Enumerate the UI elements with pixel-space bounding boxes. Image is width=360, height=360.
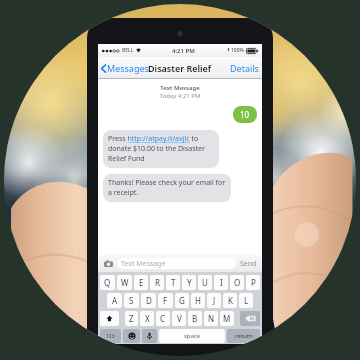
button[interactable]: E <box>134 275 148 290</box>
button[interactable]: S <box>124 293 139 308</box>
staticText: Disaster Relief <box>148 62 212 74</box>
button[interactable]: Delete <box>240 311 260 326</box>
staticText: O <box>234 277 241 288</box>
button[interactable]: W <box>117 275 132 290</box>
staticText: Text Message <box>103 84 257 92</box>
staticText: H <box>195 295 201 306</box>
button[interactable]: Y <box>182 275 196 290</box>
staticText: R <box>155 277 160 288</box>
staticText: BELL <box>122 47 134 54</box>
button[interactable]: X <box>140 311 154 326</box>
staticText: W <box>121 277 129 288</box>
button[interactable]: K <box>223 293 237 308</box>
staticText: Send <box>240 259 257 269</box>
button[interactable]: M <box>220 311 234 326</box>
staticText: L <box>244 295 249 306</box>
button[interactable]: Send <box>239 256 258 272</box>
button[interactable]: D <box>141 293 156 308</box>
button[interactable]: A <box>107 293 122 308</box>
button[interactable]: Camera <box>102 258 114 270</box>
staticText: 4:21 PM <box>172 47 195 55</box>
staticText: V <box>177 313 182 324</box>
button[interactable]: U <box>198 275 212 290</box>
button[interactable]: F <box>158 293 173 308</box>
staticText: C <box>160 313 166 324</box>
button[interactable]: O <box>230 275 244 290</box>
button[interactable]: L <box>239 293 253 308</box>
staticText: J <box>213 295 216 306</box>
button[interactable]: Shift <box>100 311 119 326</box>
staticText: A <box>112 295 118 306</box>
button[interactable]: J <box>207 293 221 308</box>
staticText: M <box>223 313 231 324</box>
staticText: F <box>163 295 168 306</box>
staticText: E <box>139 277 144 288</box>
staticText: 123 <box>106 333 115 340</box>
staticText: Text Message <box>121 259 166 269</box>
button[interactable]: Messages <box>98 58 152 78</box>
button[interactable]: G <box>175 293 189 308</box>
button[interactable]: 10 <box>233 106 257 123</box>
button[interactable]: Dictation <box>142 329 157 343</box>
button[interactable]: 123 <box>100 329 121 343</box>
button[interactable]: Q <box>100 275 115 290</box>
staticText: X <box>145 313 150 324</box>
staticText: T <box>171 277 176 288</box>
staticText: Q <box>104 277 111 288</box>
button[interactable]: Text Message <box>117 258 236 269</box>
staticText: D <box>146 295 152 306</box>
staticText: 100% <box>231 47 244 54</box>
staticText: Press http://atpay.it/axjlc to donate $1… <box>108 134 214 164</box>
staticText: P <box>251 277 256 288</box>
button[interactable]: T <box>166 275 180 290</box>
button[interactable]: Press http://atpay.it/axjlc to donate $1… <box>103 130 219 168</box>
staticText: G <box>179 295 185 306</box>
button[interactable]: N <box>204 311 218 326</box>
staticText: 10 <box>240 109 250 120</box>
button[interactable]: Details <box>227 58 262 78</box>
button[interactable]: space <box>159 329 225 343</box>
button[interactable]: C <box>156 311 170 326</box>
button[interactable]: Emoji <box>123 329 140 343</box>
staticText: K <box>228 295 233 306</box>
button[interactable]: P <box>246 275 260 290</box>
button[interactable]: I <box>214 275 228 290</box>
button[interactable]: Z <box>125 311 138 326</box>
staticText: Z <box>129 313 134 324</box>
button[interactable]: R <box>150 275 164 290</box>
staticText: S <box>129 295 134 306</box>
button[interactable]: return <box>227 329 260 343</box>
staticText: I <box>220 277 223 288</box>
button[interactable]: H <box>191 293 205 308</box>
staticText: Thanks! Please check your email for a re… <box>108 178 226 198</box>
button[interactable]: B <box>188 311 202 326</box>
staticText: U <box>202 277 208 288</box>
staticText: space <box>184 332 201 340</box>
button[interactable]: V <box>172 311 186 326</box>
staticText: return <box>235 332 253 340</box>
staticText: Messages <box>107 62 149 74</box>
staticText: B <box>192 313 198 324</box>
staticText: Today 4:21 PM <box>103 92 257 100</box>
staticText: Y <box>187 277 192 288</box>
button[interactable]: Thanks! Please check your email for a re… <box>103 174 231 202</box>
staticText: N <box>208 313 215 324</box>
